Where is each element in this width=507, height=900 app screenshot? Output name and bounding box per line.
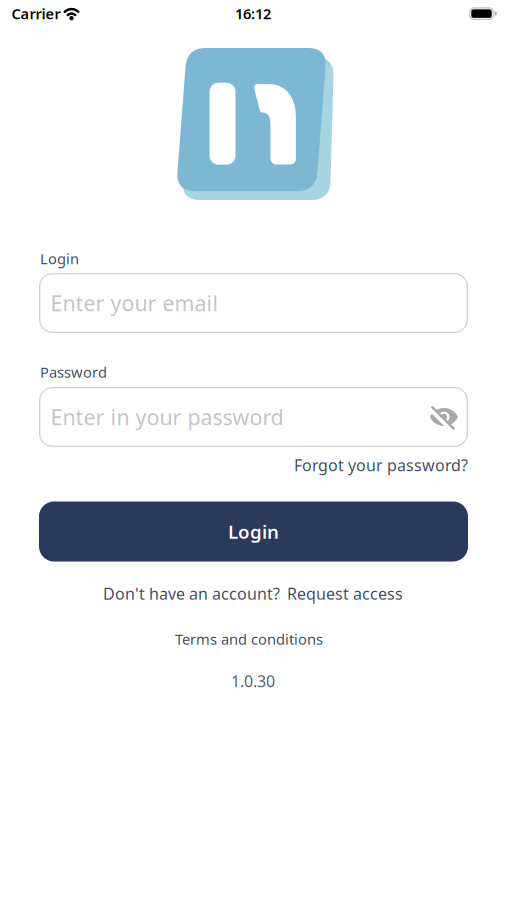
button[interactable]: Show password <box>429 402 459 432</box>
button[interactable]: Login <box>39 501 468 561</box>
button[interactable]: Forgot your password? <box>294 454 468 476</box>
staticText: Password <box>40 362 107 382</box>
staticText: Login <box>228 519 279 544</box>
button[interactable]: Request access <box>287 583 403 604</box>
button[interactable]: Enter your email <box>39 273 468 333</box>
button[interactable]: Enter in your password <box>39 387 468 447</box>
staticText: 16:12 <box>235 4 271 23</box>
staticText: Forgot your password? <box>294 454 468 476</box>
staticText: Enter in your password <box>50 403 283 431</box>
staticText: Carrier <box>11 4 60 23</box>
staticText: Enter your email <box>50 289 218 317</box>
staticText: Request access <box>287 583 403 604</box>
staticText: Don't have an account? <box>103 583 280 604</box>
staticText: Login <box>40 249 79 268</box>
staticText: 1.0.30 <box>231 670 275 692</box>
staticText: Terms and conditions <box>175 629 323 649</box>
button[interactable]: Terms and conditions <box>175 629 323 649</box>
